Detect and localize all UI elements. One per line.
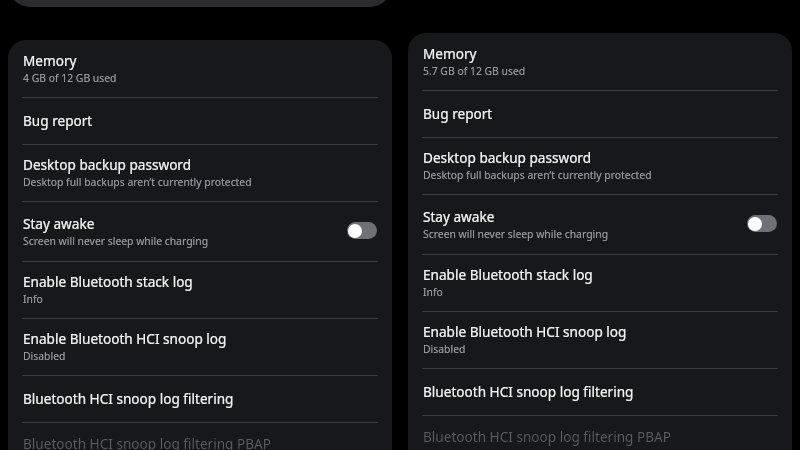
staticText: 4 GB of 12 GB used [23, 71, 117, 85]
staticText: Desktop full backups aren’t currently pr… [23, 175, 252, 189]
staticText: Bug report [423, 104, 493, 123]
staticText: Enable Bluetooth HCI snoop log [23, 329, 227, 348]
staticText: Bug report [23, 111, 93, 130]
staticText: Desktop full backups aren’t currently pr… [423, 168, 652, 182]
button[interactable]: Desktop backup password [408, 138, 792, 194]
staticText: Memory [423, 44, 477, 63]
staticText: Bluetooth HCI snoop log filtering PBAP [23, 434, 271, 450]
staticText: Disabled [423, 342, 466, 356]
staticText: Desktop backup password [23, 155, 192, 174]
staticText: Screen will never sleep while charging [23, 234, 209, 248]
button[interactable]: Enable Bluetooth HCI snoop log [8, 319, 392, 375]
staticText: Desktop backup password [423, 148, 592, 167]
button[interactable]: Toggle Stay awake [347, 222, 377, 239]
staticText: Stay awake [423, 207, 495, 226]
staticText: Bluetooth HCI snoop log filtering [23, 389, 234, 408]
button[interactable]: Memory [8, 40, 392, 97]
staticText: Info [423, 285, 443, 299]
button[interactable]: Bluetooth HCI snoop log filtering PBAP [8, 423, 392, 450]
button[interactable]: Toggle Stay awake [747, 215, 777, 232]
button[interactable]: Desktop backup password [8, 145, 392, 201]
staticText: Info [23, 292, 43, 306]
staticText: Enable Bluetooth stack log [23, 272, 193, 291]
staticText: Screen will never sleep while charging [423, 227, 609, 241]
button[interactable]: Bug report [408, 91, 792, 137]
staticText: Enable Bluetooth stack log [423, 265, 593, 284]
staticText: Memory [23, 51, 77, 70]
button[interactable]: Enable Bluetooth stack log [408, 255, 792, 311]
staticText: Enable Bluetooth HCI snoop log [423, 322, 627, 341]
button[interactable]: Enable Bluetooth HCI snoop log [408, 312, 792, 368]
staticText: Bluetooth HCI snoop log filtering PBAP [423, 427, 671, 446]
staticText: Disabled [23, 349, 66, 363]
button[interactable]: Stay awake [408, 195, 792, 254]
staticText: 5.7 GB of 12 GB used [423, 64, 526, 78]
button[interactable]: Bluetooth HCI snoop log filtering [8, 376, 392, 422]
staticText: Bluetooth HCI snoop log filtering [423, 382, 634, 401]
button[interactable]: Memory [408, 33, 792, 90]
button[interactable]: Enable Bluetooth stack log [8, 262, 392, 318]
staticText: Stay awake [23, 214, 95, 233]
button[interactable]: Bluetooth HCI snoop log filtering [408, 369, 792, 415]
button[interactable]: Bluetooth HCI snoop log filtering PBAP [408, 416, 792, 450]
button[interactable]: Stay awake [8, 202, 392, 261]
button[interactable]: Bug report [8, 98, 392, 144]
